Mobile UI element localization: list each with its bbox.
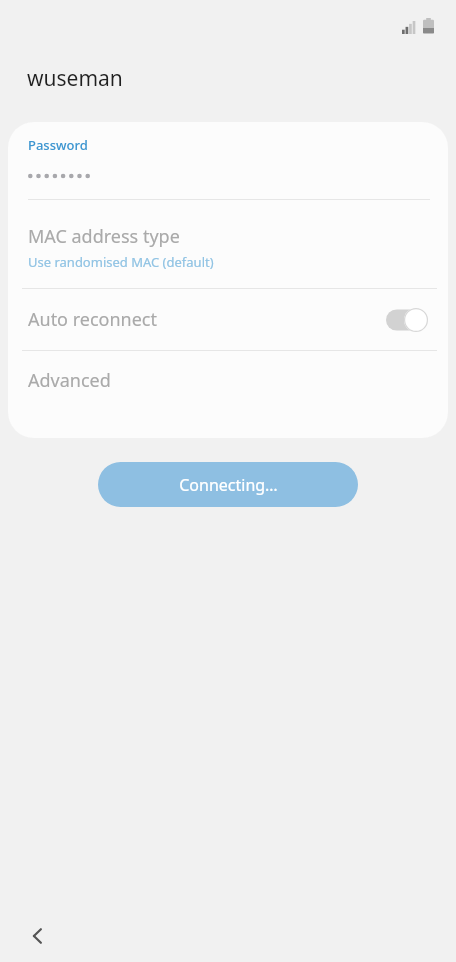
staticText: Auto reconnect [28, 307, 386, 332]
button[interactable]: Connecting… [98, 462, 358, 507]
button[interactable]: Advanced [8, 351, 448, 409]
button[interactable]: Back [14, 912, 62, 960]
button[interactable]: Auto reconnect toggle [386, 308, 428, 332]
staticText: Password [28, 136, 88, 154]
staticText: MAC address type [28, 224, 180, 249]
staticText: Advanced [28, 368, 111, 393]
staticText: wuseman [27, 64, 123, 93]
staticText: Use randomised MAC (default) [28, 253, 214, 271]
staticText: Connecting… [179, 474, 278, 496]
button[interactable]: Auto reconnect [8, 289, 448, 350]
button[interactable]: Password [8, 122, 448, 199]
button[interactable]: MAC address type [8, 224, 448, 288]
